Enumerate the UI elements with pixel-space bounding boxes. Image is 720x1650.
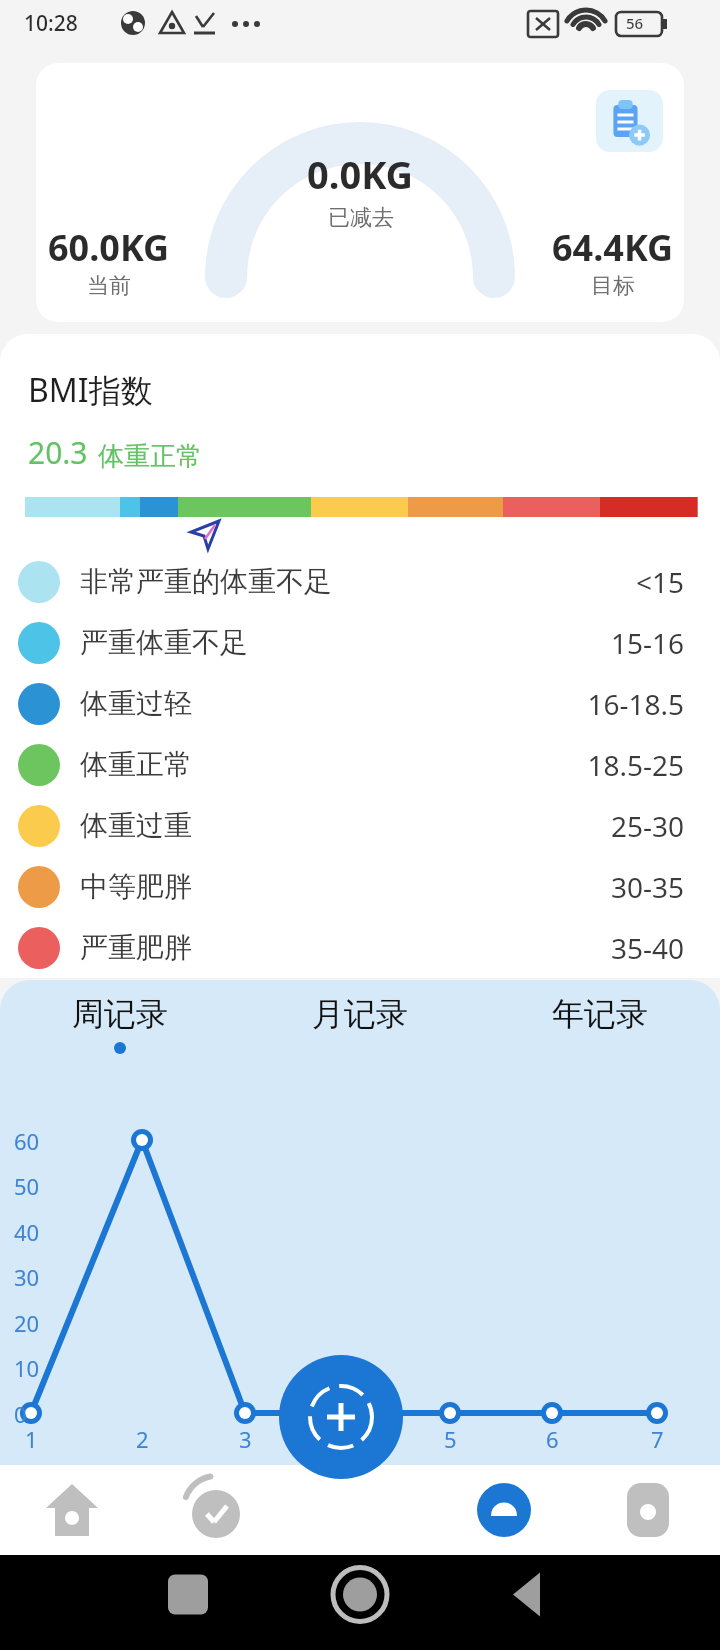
staticText: 35-40 [610,929,684,967]
button[interactable]: 严重肥胖 [0,917,720,978]
staticText: 非常严重的体重不足 [80,564,332,599]
staticText: 周记录 [72,994,168,1034]
staticText: 年记录 [552,994,648,1034]
staticText: 5 [444,1424,457,1454]
button[interactable]: 周记录 [0,994,240,1068]
staticText: 体重正常 [98,440,202,473]
staticText: 20 [14,1308,40,1338]
button[interactable]: 体重正常 [0,734,720,795]
staticText: 0 [14,1399,27,1429]
button[interactable]: Add record [596,90,663,152]
staticText: 7 [651,1424,664,1454]
staticText: 体重正常 [80,747,192,782]
staticText: 当前 [87,272,131,300]
button[interactable]: 0.0KG [36,63,684,322]
staticText: 2 [136,1424,149,1454]
button[interactable]: 非常严重的体重不足 [0,551,720,612]
staticText: 3 [239,1424,252,1454]
staticText: 25-30 [610,807,684,845]
staticText: 30-35 [610,868,684,906]
button[interactable]: Weight [432,1465,576,1555]
staticText: 56 [626,13,644,33]
staticText: 体重过重 [80,808,192,843]
staticText: 6 [546,1424,559,1454]
staticText: 体重过轻 [80,686,192,721]
staticText: 64.4KG [552,223,674,272]
staticText: 30 [14,1262,40,1292]
staticText: 60.0KG [48,223,170,272]
button[interactable]: 体重过轻 [0,673,720,734]
staticText: 40 [14,1217,40,1247]
staticText: 中等肥胖 [80,869,192,904]
staticText: 目标 [591,272,635,300]
staticText: 已减去 [328,204,394,232]
button[interactable]: 月记录 [240,994,480,1068]
staticText: 月记录 [312,994,408,1034]
staticText: 18.5-25 [587,746,684,784]
staticText: 4 [341,1424,354,1454]
staticText: 16-18.5 [587,685,684,723]
button[interactable]: 体重过重 [0,795,720,856]
staticText: 10 [14,1353,40,1383]
button[interactable]: Reminders [144,1465,288,1555]
button[interactable]: 严重体重不足 [0,612,720,673]
staticText: 1 [25,1424,38,1454]
staticText: 严重体重不足 [80,625,248,660]
button[interactable]: Add weight [279,1355,403,1479]
staticText: 10:28 [24,9,78,38]
button[interactable]: 年记录 [480,994,720,1068]
staticText: 0.0KG [307,148,414,200]
staticText: 20.3 [28,432,88,473]
staticText: <15 [635,563,684,601]
staticText: 50 [14,1171,40,1201]
staticText: BMI指数 [28,368,153,412]
button[interactable]: 中等肥胖 [0,856,720,917]
button[interactable]: Home [0,1465,144,1555]
staticText: 15-16 [610,624,684,662]
staticText: 60 [14,1126,40,1156]
button[interactable]: Profile [576,1465,720,1555]
staticText: 严重肥胖 [80,930,192,965]
